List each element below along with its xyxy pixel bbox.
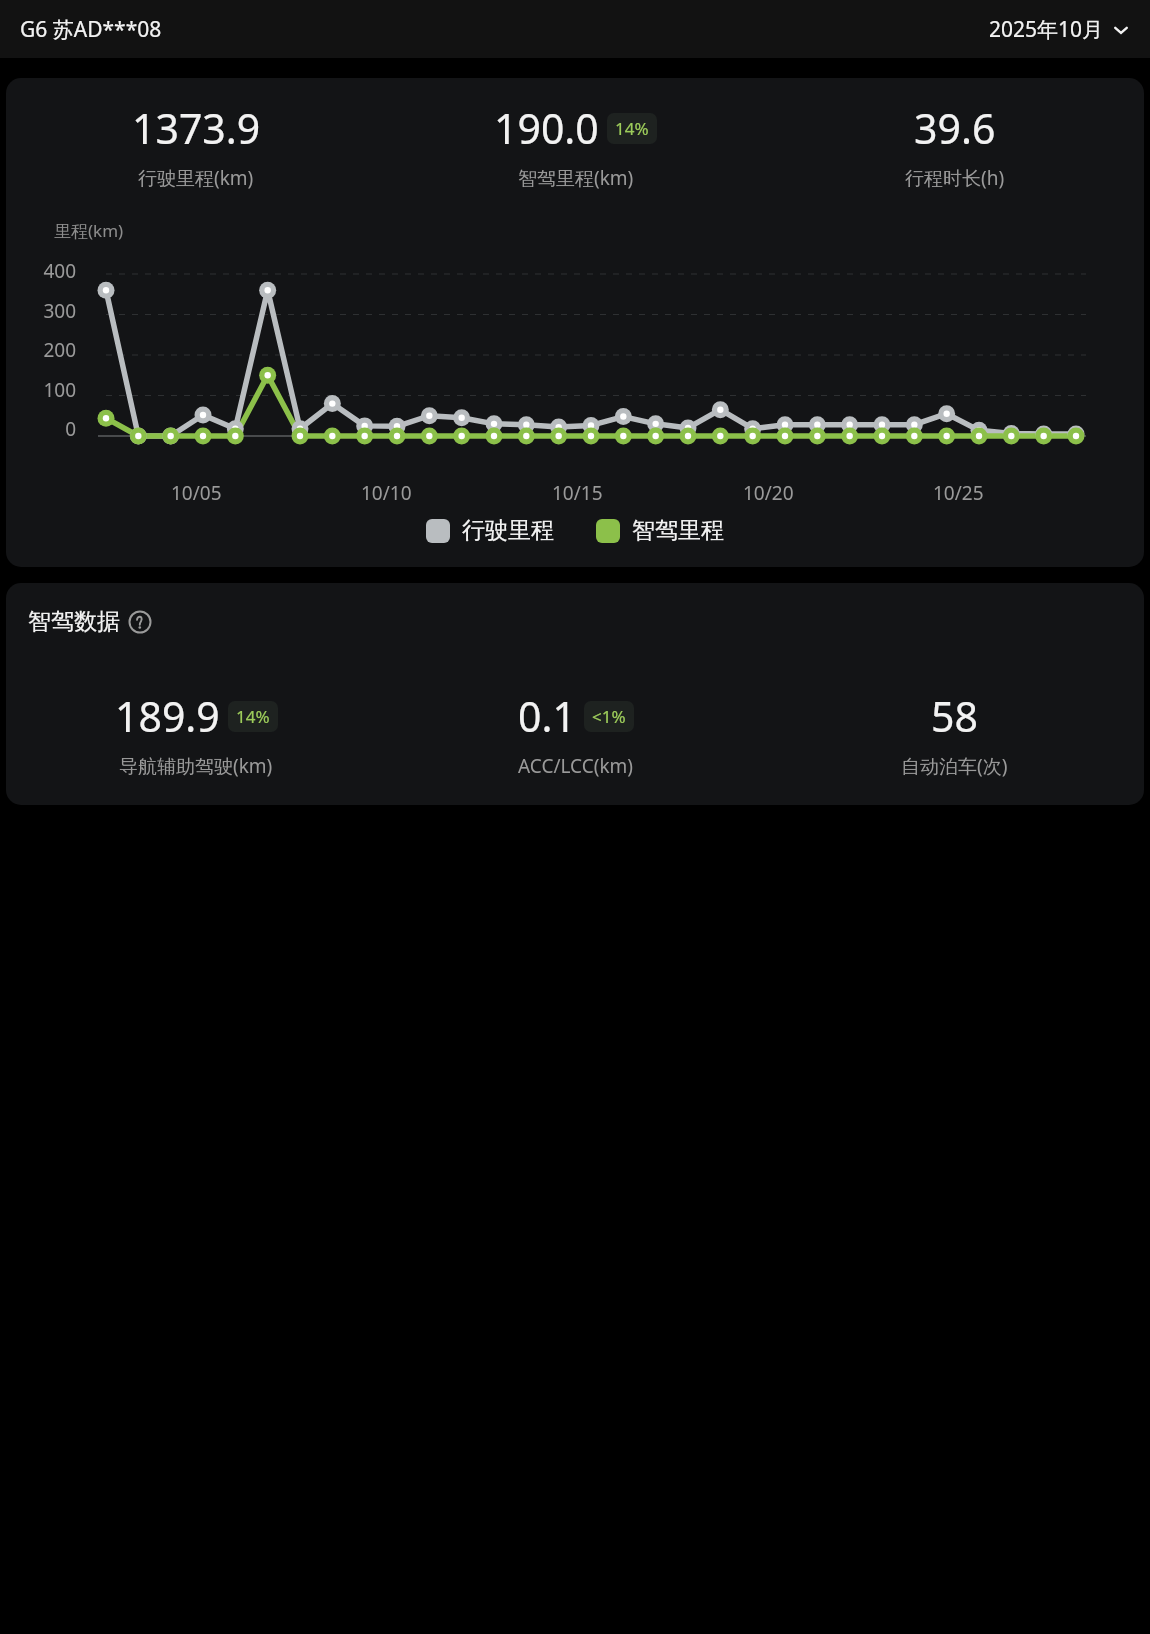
staticText: 10/05 [171,480,222,506]
staticText: 189.9 [115,688,220,744]
button[interactable]: 58 [765,688,1144,779]
staticText: 100 [43,377,76,403]
button[interactable]: 39.6 [765,100,1144,191]
button[interactable]: 189.9 [6,688,386,779]
button[interactable]: 2025年10月 [985,11,1134,48]
button[interactable]: 0.1 [386,688,765,779]
staticText: 2025年10月 [989,15,1104,44]
staticText: 1373.9 [132,100,261,156]
button[interactable]: 说明 [128,610,152,634]
button[interactable]: G6 苏AD***08 [20,15,162,44]
staticText: 10/15 [552,480,603,506]
staticText: 10/10 [361,480,412,506]
button[interactable]: 行驶里程 [426,516,554,545]
staticText: ACC/LCC(km) [518,753,633,779]
staticText: 智驾里程(km) [518,165,634,191]
button[interactable]: 190.0 [386,100,765,191]
staticText: 智驾里程 [632,516,724,545]
staticText: <1% [592,705,626,728]
staticText: 0.1 [518,688,576,744]
staticText: 58 [931,688,978,744]
staticText: 行程时长(h) [905,165,1005,191]
staticText: 里程(km) [54,219,124,242]
staticText: 14% [236,705,270,728]
button[interactable]: 1373.9 [6,78,1144,567]
staticText: 自动泊车(次) [901,753,1008,779]
staticText: 10/20 [743,480,794,506]
staticText: 0 [65,416,76,442]
button[interactable]: 智驾里程 [596,516,724,545]
staticText: 400 [43,258,76,284]
staticText: 10/25 [933,480,984,506]
staticText: 200 [43,337,76,363]
staticText: 导航辅助驾驶(km) [119,753,273,779]
staticText: 智驾数据 [28,607,120,636]
staticText: 14% [615,117,649,140]
button[interactable]: 智驾数据 [6,583,1144,805]
staticText: 39.6 [914,100,996,156]
button[interactable]: 1373.9 [6,100,386,191]
staticText: 300 [43,298,76,324]
staticText: 190.0 [494,100,599,156]
staticText: 行驶里程(km) [138,165,254,191]
staticText: 行驶里程 [462,516,554,545]
